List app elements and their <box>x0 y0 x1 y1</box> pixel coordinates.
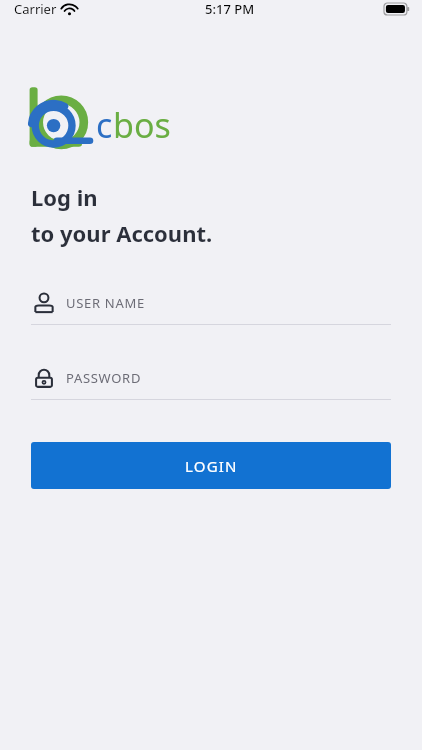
staticText: bos <box>113 102 171 148</box>
button[interactable]: Password <box>31 365 391 400</box>
staticText: Log in <box>31 182 98 212</box>
staticText: Carrier <box>14 0 57 18</box>
staticText: c <box>96 102 113 148</box>
staticText: PASSWORD <box>66 369 142 387</box>
other: cbos logo <box>28 86 92 152</box>
staticText: LOGIN <box>185 456 238 476</box>
other: Password <box>32 366 56 390</box>
staticText: 5:17 PM <box>205 0 255 18</box>
button[interactable]: User name <box>31 290 391 325</box>
staticText: to your Account. <box>31 218 213 248</box>
staticText: USER NAME <box>66 294 145 312</box>
other: User name <box>32 291 56 315</box>
button[interactable]: LOGIN <box>31 442 391 489</box>
